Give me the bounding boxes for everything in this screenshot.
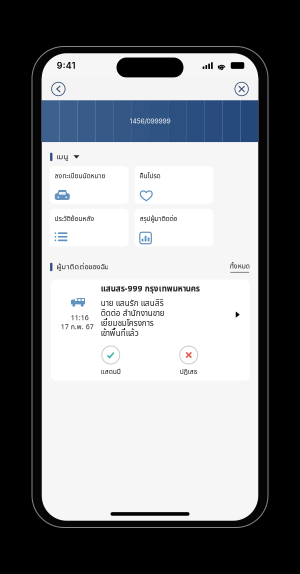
button[interactable]: แสดนมี xyxy=(91,345,131,377)
button[interactable]: ทั้งหมด xyxy=(230,261,250,272)
button[interactable]: ลงทะเบียนนัดหมาย xyxy=(49,166,128,204)
button[interactable]: Back xyxy=(48,78,68,100)
staticText: 1456/099999 xyxy=(129,117,170,125)
staticText: 9:41 xyxy=(57,60,76,71)
button[interactable]: Close xyxy=(232,78,252,100)
staticText: คืนโปรด xyxy=(139,171,160,181)
button[interactable]: คืนโปรด xyxy=(134,166,213,204)
staticText: ลงทะเบียนนัดหมาย xyxy=(54,171,105,181)
staticText: เมนู xyxy=(56,151,68,163)
staticText: ผู้มาติดต่อของฉัน xyxy=(56,261,108,272)
staticText: แสดนมี xyxy=(101,367,121,377)
staticText: ติดต่อ สำนักงานขาย xyxy=(101,307,165,320)
staticText: 17 ก.พ. 67 xyxy=(61,322,94,332)
button[interactable]: ปฏิเสธ xyxy=(169,345,209,377)
staticText: เข้าพื้นที่แล้ว xyxy=(101,327,139,340)
button[interactable]: 11:16 xyxy=(51,279,250,380)
button[interactable]: สรุปผู้มาติดต่อ xyxy=(134,209,213,246)
staticText: สรุปผู้มาติดต่อ xyxy=(139,214,177,224)
button[interactable]: ประวัติย้อนหลัง xyxy=(49,209,128,246)
staticText: แสนสิริ-999 กรุงเทพมหานคร xyxy=(101,283,200,295)
staticText: ประวัติย้อนหลัง xyxy=(54,214,94,224)
staticText: เยี่ยมชมโครงการ xyxy=(101,317,154,330)
staticText: ปฏิเสธ xyxy=(180,367,198,377)
staticText: นาย แสนรัก แสนสิริ xyxy=(101,297,164,310)
staticText: 11:16 xyxy=(71,313,89,323)
staticText: ทั้งหมด xyxy=(230,261,250,272)
